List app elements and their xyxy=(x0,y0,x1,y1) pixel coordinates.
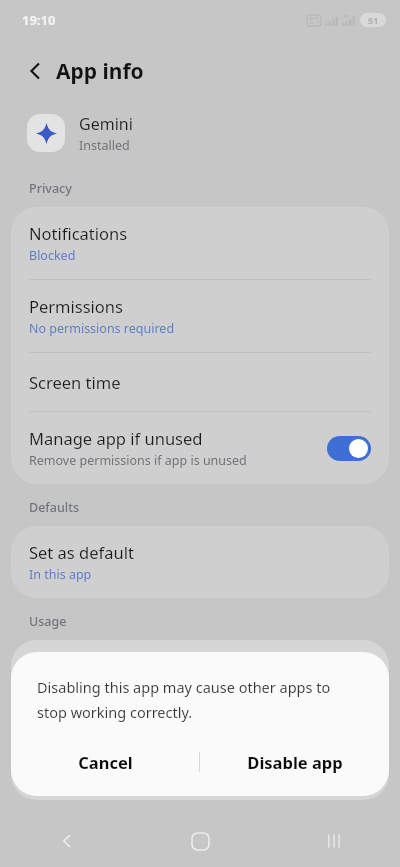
staticText: Open xyxy=(58,767,91,784)
button[interactable]: Manage app if unused, on xyxy=(327,436,371,461)
staticText: Manage app if unused xyxy=(29,427,203,449)
staticText: In this app xyxy=(29,566,92,583)
button[interactable]: Permissions xyxy=(11,280,389,352)
staticText: No permissions required xyxy=(29,320,175,337)
staticText: Notifications xyxy=(29,222,128,244)
staticText: Set as default xyxy=(29,541,134,563)
staticText: Disable app xyxy=(247,751,343,773)
staticText: Remove permissions if app is unused xyxy=(29,452,247,469)
staticText: Privacy xyxy=(29,180,72,197)
staticText: Gemini xyxy=(79,113,133,135)
button[interactable]: Set as default xyxy=(11,526,389,598)
button[interactable]: Screen time xyxy=(11,353,389,411)
staticText: Cancel xyxy=(78,751,133,773)
button[interactable]: Home xyxy=(134,815,267,867)
staticText: 51 xyxy=(368,14,379,26)
staticText: Disabling this app may cause other apps … xyxy=(37,677,363,722)
staticText: Defaults xyxy=(29,499,80,516)
button[interactable]: Force stop xyxy=(263,758,389,792)
button[interactable]: Manage app if unused xyxy=(11,412,389,484)
staticText: App info xyxy=(56,57,144,86)
button[interactable]: Cancel xyxy=(11,736,199,788)
button[interactable]: Disable app xyxy=(200,736,389,788)
staticText: Usage xyxy=(29,613,67,630)
staticText: Screen time xyxy=(29,371,121,393)
staticText: Permissions xyxy=(29,295,123,317)
staticText: 19:10 xyxy=(22,11,56,29)
staticText: Force stop xyxy=(295,767,357,784)
button[interactable]: Back xyxy=(18,54,52,88)
button[interactable]: Open xyxy=(11,758,137,792)
button[interactable]: Disable xyxy=(137,758,263,792)
button[interactable]: Notifications xyxy=(11,207,389,279)
button[interactable]: Gemini xyxy=(0,102,400,164)
staticText: Installed xyxy=(79,137,130,154)
staticText: Blocked xyxy=(29,247,76,264)
